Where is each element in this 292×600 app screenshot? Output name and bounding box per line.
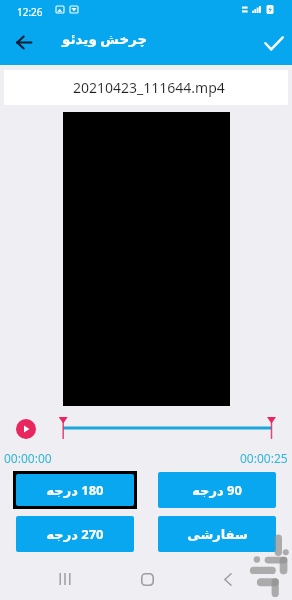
button[interactable]: Play bbox=[16, 419, 36, 439]
staticText: ‏180 درجه bbox=[46, 481, 104, 499]
button[interactable]: Done bbox=[257, 29, 291, 58]
button[interactable]: Home bbox=[125, 566, 169, 592]
button[interactable]: ‏180 درجه bbox=[16, 474, 134, 506]
staticText: 00:00:25 bbox=[240, 450, 288, 466]
staticText: 00:00:00 bbox=[4, 450, 52, 466]
button[interactable]: ‏90 درجه bbox=[158, 472, 276, 508]
staticText: چرخش ویدئو bbox=[62, 30, 148, 48]
staticText: 12:26 bbox=[17, 5, 43, 19]
button[interactable]: Back bbox=[7, 28, 41, 57]
staticText: سفارشی bbox=[187, 527, 248, 542]
staticText: 20210423_111644.mp4 bbox=[73, 78, 225, 97]
staticText: ‏270 درجه bbox=[46, 525, 104, 543]
button[interactable]: Recents bbox=[43, 566, 87, 592]
button[interactable]: ‏270 درجه bbox=[16, 516, 134, 552]
staticText: ‏90 درجه bbox=[192, 481, 242, 499]
button[interactable]: سفارشی bbox=[158, 516, 276, 552]
button[interactable]: Back bbox=[206, 566, 250, 592]
